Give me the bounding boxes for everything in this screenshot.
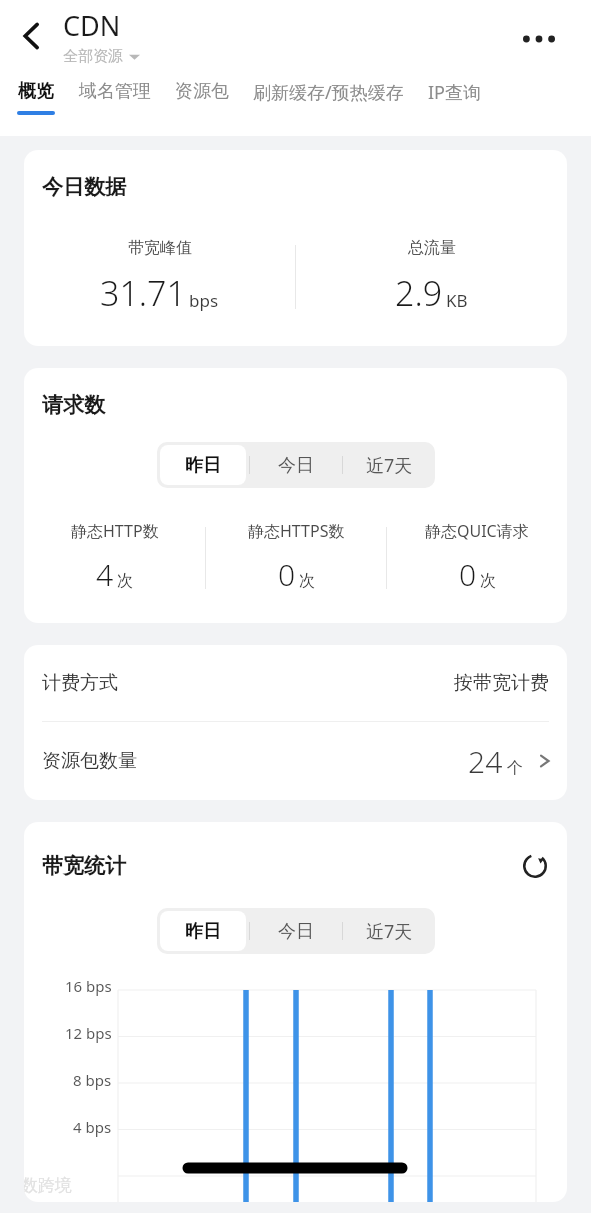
staticText: 静态HTTPS数 <box>248 520 345 542</box>
staticText: 次 <box>299 571 315 591</box>
button[interactable]: 刷新缓存/预热缓存 <box>253 80 404 113</box>
staticText: 16 bps <box>65 976 112 996</box>
staticText: 12 bps <box>65 1023 112 1043</box>
staticText: 昨日 <box>185 920 221 943</box>
staticText: 近7天 <box>366 453 413 478</box>
staticText: 今日 <box>278 920 314 943</box>
staticText: bps <box>189 289 219 312</box>
staticText: 今日数据 <box>42 174 126 200</box>
staticText: 计费方式 <box>42 671 118 695</box>
button[interactable]: IP查询 <box>428 80 481 113</box>
button[interactable]: 今日 <box>250 908 342 954</box>
staticText: 概览 <box>18 80 54 103</box>
staticText: 域名管理 <box>79 80 151 103</box>
button[interactable]: 昨日 <box>160 445 246 485</box>
staticText: 请求数 <box>42 392 105 418</box>
button[interactable]: 资源包数量 <box>24 722 567 800</box>
staticText: 4 bps <box>73 1117 112 1137</box>
staticText: 总流量 <box>408 238 456 258</box>
staticText: 8 bps <box>73 1070 112 1090</box>
staticText: 按带宽计费 <box>454 671 549 695</box>
button[interactable]: 资源包 <box>175 80 229 111</box>
staticText: CDN <box>63 7 121 44</box>
button[interactable]: 计费方式 <box>24 645 567 721</box>
button[interactable]: 昨日 <box>160 911 246 951</box>
button[interactable]: Back <box>12 16 52 56</box>
staticText: 六数跨境 <box>24 1175 72 1196</box>
staticText: 带宽统计 <box>42 853 126 879</box>
button[interactable]: More options <box>518 18 560 60</box>
staticText: 静态HTTP数 <box>71 520 159 542</box>
button[interactable]: 近7天 <box>343 442 435 488</box>
staticText: 个 <box>507 758 523 778</box>
staticText: 31.71 <box>100 270 186 316</box>
staticText: IP查询 <box>428 80 481 105</box>
button[interactable]: 今日 <box>250 442 342 488</box>
button[interactable]: Refresh <box>515 846 555 886</box>
staticText: 次 <box>117 571 133 591</box>
staticText: 0 <box>278 554 296 595</box>
staticText: 静态QUIC请求 <box>425 520 529 542</box>
button[interactable]: 概览 <box>17 80 55 115</box>
staticText: 带宽峰值 <box>128 238 192 258</box>
staticText: 资源包 <box>175 80 229 103</box>
button[interactable]: 全部资源 <box>63 47 140 66</box>
staticText: 资源包数量 <box>42 749 137 773</box>
staticText: 昨日 <box>185 454 221 477</box>
staticText: 2.9 <box>395 270 443 316</box>
staticText: 刷新缓存/预热缓存 <box>253 80 404 105</box>
staticText: 全部资源 <box>63 47 123 66</box>
staticText: 今日 <box>278 454 314 477</box>
button[interactable]: 域名管理 <box>79 80 151 111</box>
button[interactable]: 近7天 <box>343 908 435 954</box>
staticText: 次 <box>480 571 496 591</box>
staticText: 0 <box>459 554 477 595</box>
staticText: 4 <box>96 554 114 595</box>
staticText: 24 <box>468 741 503 782</box>
staticText: KB <box>446 289 468 312</box>
staticText: 近7天 <box>366 919 413 944</box>
